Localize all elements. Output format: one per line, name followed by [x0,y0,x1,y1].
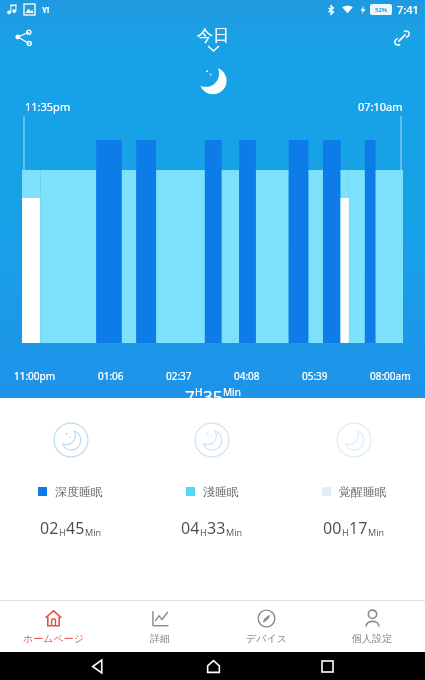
staticText: デバイス [246,632,287,645]
staticText: Min [223,385,241,397]
staticText: 覚醒睡眠 [339,484,387,499]
button[interactable]: Link device [385,21,419,55]
staticText: H [59,526,66,538]
button[interactable]: Home [196,652,230,680]
staticText: 個人設定 [352,632,392,645]
staticText: 02:37 [166,369,192,383]
button[interactable]: 詳細 [107,601,213,652]
staticText: Min [368,526,385,538]
staticText: 01:06 [98,369,124,383]
staticText: 詳細 [150,632,170,645]
staticText: 今日 [197,26,229,46]
staticText: 7:41 [397,2,419,17]
staticText: 33 [207,517,226,539]
staticText: ホームページ [23,632,84,645]
staticText: Min [226,526,243,538]
staticText: 11:35pm [25,99,71,114]
button[interactable]: 今日 [197,26,229,51]
staticText: Min [85,526,102,538]
button[interactable]: 個人設定 [319,601,425,652]
staticText: 45 [66,517,85,539]
button[interactable]: Back [81,652,115,680]
button[interactable]: ホームページ [0,601,107,652]
staticText: H [200,526,207,538]
staticText: 07:10am [358,99,403,114]
staticText: 淺睡眠 [203,484,239,499]
staticText: 深度睡眠 [55,484,103,499]
staticText: 04:08 [234,369,260,383]
staticText: 52% [375,6,388,14]
staticText: 04 [181,517,200,539]
button[interactable]: Share [6,21,40,55]
button[interactable]: デバイス [213,601,319,652]
staticText: Y! [42,4,50,15]
staticText: 11:00pm [14,369,56,383]
staticText: 7 [185,385,195,398]
staticText: 02 [40,517,59,539]
staticText: 00 [323,517,342,539]
staticText: 05:39 [302,369,328,383]
staticText: 17 [349,517,368,539]
staticText: H [342,526,349,538]
staticText: H [195,385,203,397]
staticText: 35 [203,385,223,398]
button[interactable]: Recents [310,652,344,680]
staticText: 08:00am [370,369,411,383]
